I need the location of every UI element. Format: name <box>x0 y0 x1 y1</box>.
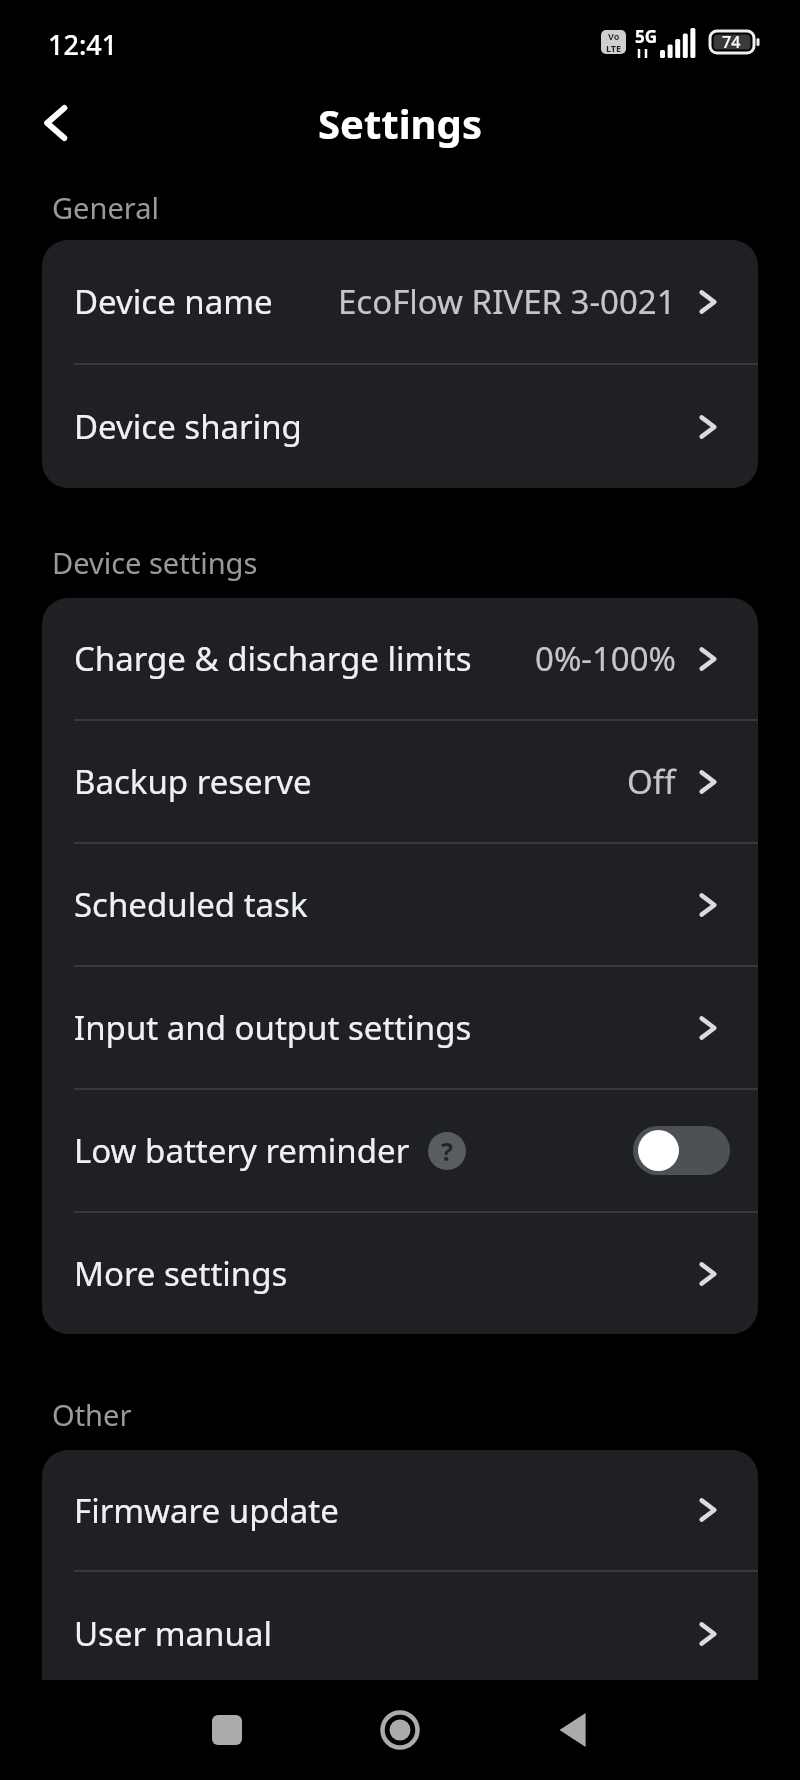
button[interactable] <box>633 1126 730 1175</box>
staticText: Low battery reminder <box>74 1128 410 1173</box>
button[interactable] <box>34 101 78 145</box>
button[interactable] <box>212 1715 242 1745</box>
staticText: 5G <box>635 25 658 48</box>
staticText: Scheduled task <box>74 882 308 927</box>
staticText: 0%-100% <box>535 636 676 681</box>
staticText: Firmware update <box>74 1488 339 1533</box>
staticText: 74 <box>722 31 741 53</box>
button[interactable]: Device sharing <box>42 365 758 488</box>
button[interactable]: Backup reserve <box>42 721 758 842</box>
button[interactable]: Firmware update <box>42 1450 758 1570</box>
staticText: More settings <box>74 1251 288 1296</box>
button[interactable]: Input and output settings <box>42 967 758 1088</box>
staticText: LTE <box>606 42 622 54</box>
button[interactable]: Low battery reminder <box>42 1090 758 1211</box>
staticText: Device settings <box>52 543 258 582</box>
staticText: Device sharing <box>74 404 302 449</box>
staticText: Input and output settings <box>74 1005 472 1050</box>
staticText: Other <box>52 1395 132 1434</box>
button[interactable]: Charge & discharge limits <box>42 598 758 719</box>
staticText: ? <box>441 1134 453 1168</box>
button[interactable] <box>558 1713 588 1747</box>
staticText: Charge & discharge limits <box>74 636 472 681</box>
staticText: EcoFlow RIVER 3-0021 <box>338 279 676 324</box>
staticText: Settings <box>318 96 482 150</box>
staticText: General <box>52 188 159 227</box>
button[interactable]: User manual <box>42 1572 758 1695</box>
button[interactable]: Device name <box>42 240 758 363</box>
staticText: 12:41 <box>48 26 118 63</box>
button[interactable]: More settings <box>42 1213 758 1334</box>
staticText: Off <box>627 759 676 804</box>
button[interactable]: Scheduled task <box>42 844 758 965</box>
staticText: Device name <box>74 279 273 324</box>
staticText: Backup reserve <box>74 759 312 804</box>
staticText: Vo <box>608 30 620 42</box>
staticText: User manual <box>74 1611 272 1656</box>
button[interactable] <box>380 1710 420 1750</box>
